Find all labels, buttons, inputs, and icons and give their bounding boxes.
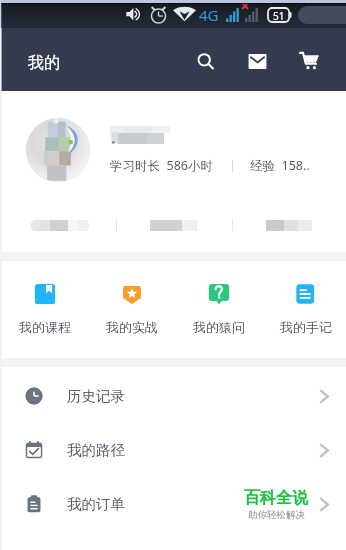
button[interactable]: Messages — [239, 43, 276, 80]
button[interactable]: 我的订单 — [0, 477, 346, 531]
staticText: 我的路径 — [67, 441, 125, 459]
staticText: 4G — [199, 5, 219, 25]
staticText: 我的 — [28, 53, 60, 73]
staticText: 51 — [273, 9, 285, 23]
staticText: 助你轻松解决 — [248, 509, 305, 521]
button[interactable]: Shopping cart — [291, 42, 328, 79]
button[interactable]: 历史记录 — [0, 369, 346, 423]
button[interactable]: 我的课程 — [2, 261, 88, 358]
staticText: 历史记录 — [67, 387, 125, 405]
staticText: 我的实战 — [106, 319, 158, 335]
button[interactable]: 我的手记 — [263, 261, 346, 358]
staticText: 我的课程 — [19, 319, 71, 335]
staticText: 经验 158.. — [250, 157, 310, 174]
staticText: 百科全说 — [244, 488, 308, 508]
button[interactable]: 我的猿问 — [176, 261, 262, 358]
staticText: 我的手记 — [280, 319, 332, 335]
staticText: 学习时长 586小时 — [110, 157, 213, 174]
button[interactable]: 我的实战 — [89, 261, 175, 358]
staticText: 我的猿问 — [193, 319, 245, 335]
staticText: 我的订单 — [67, 495, 125, 513]
button[interactable]: 我的路径 — [0, 423, 346, 477]
button[interactable]: Search — [188, 44, 225, 81]
